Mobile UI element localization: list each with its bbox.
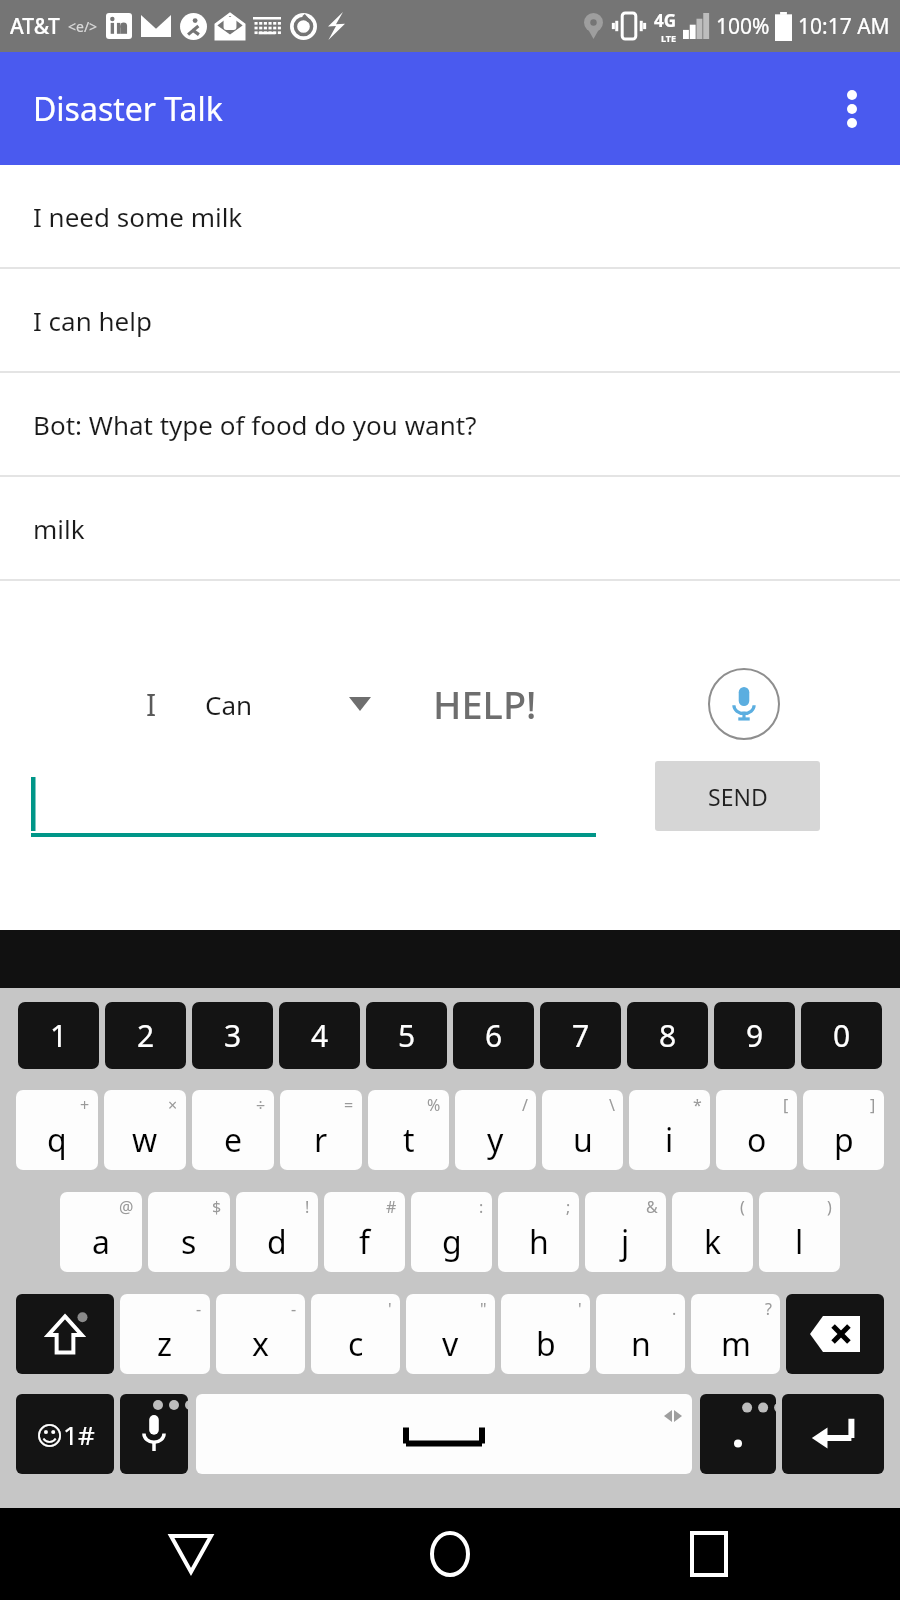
staticText: m [721,1322,751,1366]
staticText: [ [783,1094,789,1116]
button[interactable]: Recents [673,1518,745,1590]
staticText: 6 [485,1015,503,1056]
button[interactable]: Voice input [708,668,780,740]
button[interactable]: ] [803,1090,884,1170]
staticText: ' [578,1298,582,1320]
button[interactable]: 3 [192,1002,273,1069]
button[interactable]: Backspace [786,1294,884,1374]
staticText: 1 [50,1015,68,1056]
staticText: l [795,1220,804,1264]
staticText: ÷ [256,1094,266,1116]
staticText: e [224,1118,243,1162]
button[interactable]: Enter [782,1394,884,1474]
staticText: i [665,1118,674,1162]
staticText: r [314,1118,328,1162]
button[interactable]: ' [311,1294,400,1374]
button[interactable]: 4 [279,1002,360,1069]
button[interactable]: @ [60,1192,142,1272]
button[interactable]: Bot: What type of food do you want? [0,373,900,475]
button[interactable]: # [324,1192,405,1272]
staticText: 4G [654,9,677,32]
staticText: HELP! [433,678,537,730]
button[interactable]: \ [542,1090,623,1170]
button[interactable]: = [280,1090,362,1170]
staticText: 100% [716,12,770,41]
button[interactable]: 1 [18,1002,99,1069]
button[interactable]: Period [700,1394,776,1474]
staticText: n [631,1322,651,1366]
staticText: 9 [746,1015,764,1056]
button[interactable]: ) [759,1192,840,1272]
button[interactable]: & [585,1192,666,1272]
button[interactable]: " [406,1294,495,1374]
staticText: Disaster Talk [33,87,223,131]
button[interactable]: × [104,1090,186,1170]
button[interactable]: Voice typing [120,1394,188,1474]
staticText: AT&T [10,12,60,41]
staticText: Bot: What type of food do you want? [33,407,477,442]
staticText: s [181,1220,197,1264]
staticText: b [536,1322,556,1366]
staticText: ☺1# [36,1417,95,1452]
staticText: j [621,1220,630,1264]
button[interactable]: ÷ [192,1090,274,1170]
staticText: d [267,1220,287,1264]
staticText: k [704,1220,722,1264]
button[interactable]: . [596,1294,685,1374]
button[interactable] [31,775,596,837]
button[interactable]: Home [414,1518,486,1590]
button[interactable]: Can [205,671,395,737]
staticText: ; [566,1196,571,1218]
staticText: 7 [572,1015,590,1056]
staticText: LTE [661,32,677,44]
staticText: " [480,1298,487,1320]
button[interactable]: ? [691,1294,780,1374]
button[interactable]: 7 [540,1002,621,1069]
button[interactable]: 8 [627,1002,708,1069]
button[interactable]: % [368,1090,449,1170]
button[interactable]: Back [155,1518,227,1590]
button[interactable]: ; [498,1192,579,1272]
button[interactable]: 5 [366,1002,447,1069]
button[interactable]: I can help [0,269,900,371]
staticText: x [252,1322,269,1366]
staticText: c [348,1322,364,1366]
button[interactable]: 0 [801,1002,882,1069]
staticText: × [168,1094,178,1116]
button[interactable]: Space [196,1394,692,1474]
button[interactable]: * [629,1090,710,1170]
button[interactable]: - [216,1294,305,1374]
button[interactable]: ! [236,1192,318,1272]
button[interactable]: ☺1# [16,1394,114,1474]
staticText: . [672,1298,677,1320]
staticText: w [132,1118,158,1162]
button[interactable]: I need some milk [0,165,900,267]
button[interactable]: More options [824,81,880,137]
staticText: ! [305,1196,310,1218]
button[interactable]: / [455,1090,536,1170]
staticText: p [834,1118,854,1162]
staticText: ( [740,1196,745,1218]
button[interactable]: ' [501,1294,590,1374]
staticText: <e/> [68,17,98,36]
staticText: v [442,1322,459,1366]
button[interactable]: Shift [16,1294,114,1374]
staticText: + [80,1094,90,1116]
button[interactable]: [ [716,1090,797,1170]
button[interactable]: 6 [453,1002,534,1069]
button[interactable]: SEND [655,761,820,831]
staticText: f [359,1220,371,1264]
button[interactable]: milk [0,477,900,579]
staticText: 0 [833,1015,851,1056]
button[interactable]: + [16,1090,98,1170]
staticText: ? [765,1298,772,1320]
button[interactable]: 2 [105,1002,186,1069]
staticText: % [427,1094,441,1116]
button[interactable]: : [411,1192,492,1272]
staticText: a [92,1220,110,1264]
button[interactable]: ( [672,1192,753,1272]
button[interactable]: $ [148,1192,230,1272]
staticText: = [344,1094,354,1116]
button[interactable]: 9 [714,1002,795,1069]
button[interactable]: - [120,1294,210,1374]
